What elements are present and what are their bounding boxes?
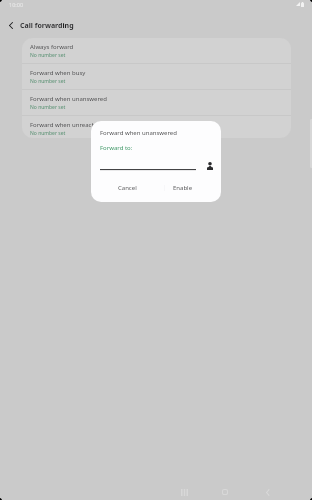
staticText: No number set — [30, 52, 66, 59]
button[interactable]: Forward when unreachable — [22, 116, 291, 138]
staticText: Cancel — [118, 184, 137, 192]
button[interactable]: Cancel — [99, 180, 155, 196]
staticText: No number set — [30, 130, 66, 137]
staticText: 10:00 — [9, 1, 24, 8]
staticText: Forward to: — [100, 144, 133, 152]
staticText: Forward when unanswered — [30, 95, 107, 103]
button[interactable]: Home — [217, 484, 233, 500]
staticText: Forward when unreachable — [30, 121, 108, 129]
button[interactable]: Forward when busy — [22, 64, 291, 89]
button[interactable]: Back — [2, 16, 20, 34]
button[interactable]: Always forward — [22, 38, 291, 63]
button[interactable]: Forward when unanswered — [22, 90, 291, 115]
staticText: Forward when busy — [30, 69, 86, 77]
staticText: Always forward — [30, 43, 74, 51]
staticText: Call forwarding — [20, 21, 74, 31]
staticText: No number set — [30, 78, 66, 85]
staticText: Enable — [173, 184, 193, 192]
button[interactable]: Recents — [176, 484, 192, 500]
button[interactable]: Choose contact — [203, 159, 217, 173]
staticText: Forward when unanswered — [100, 129, 177, 137]
staticText: No number set — [30, 104, 66, 111]
button[interactable]: Enable — [155, 180, 211, 196]
